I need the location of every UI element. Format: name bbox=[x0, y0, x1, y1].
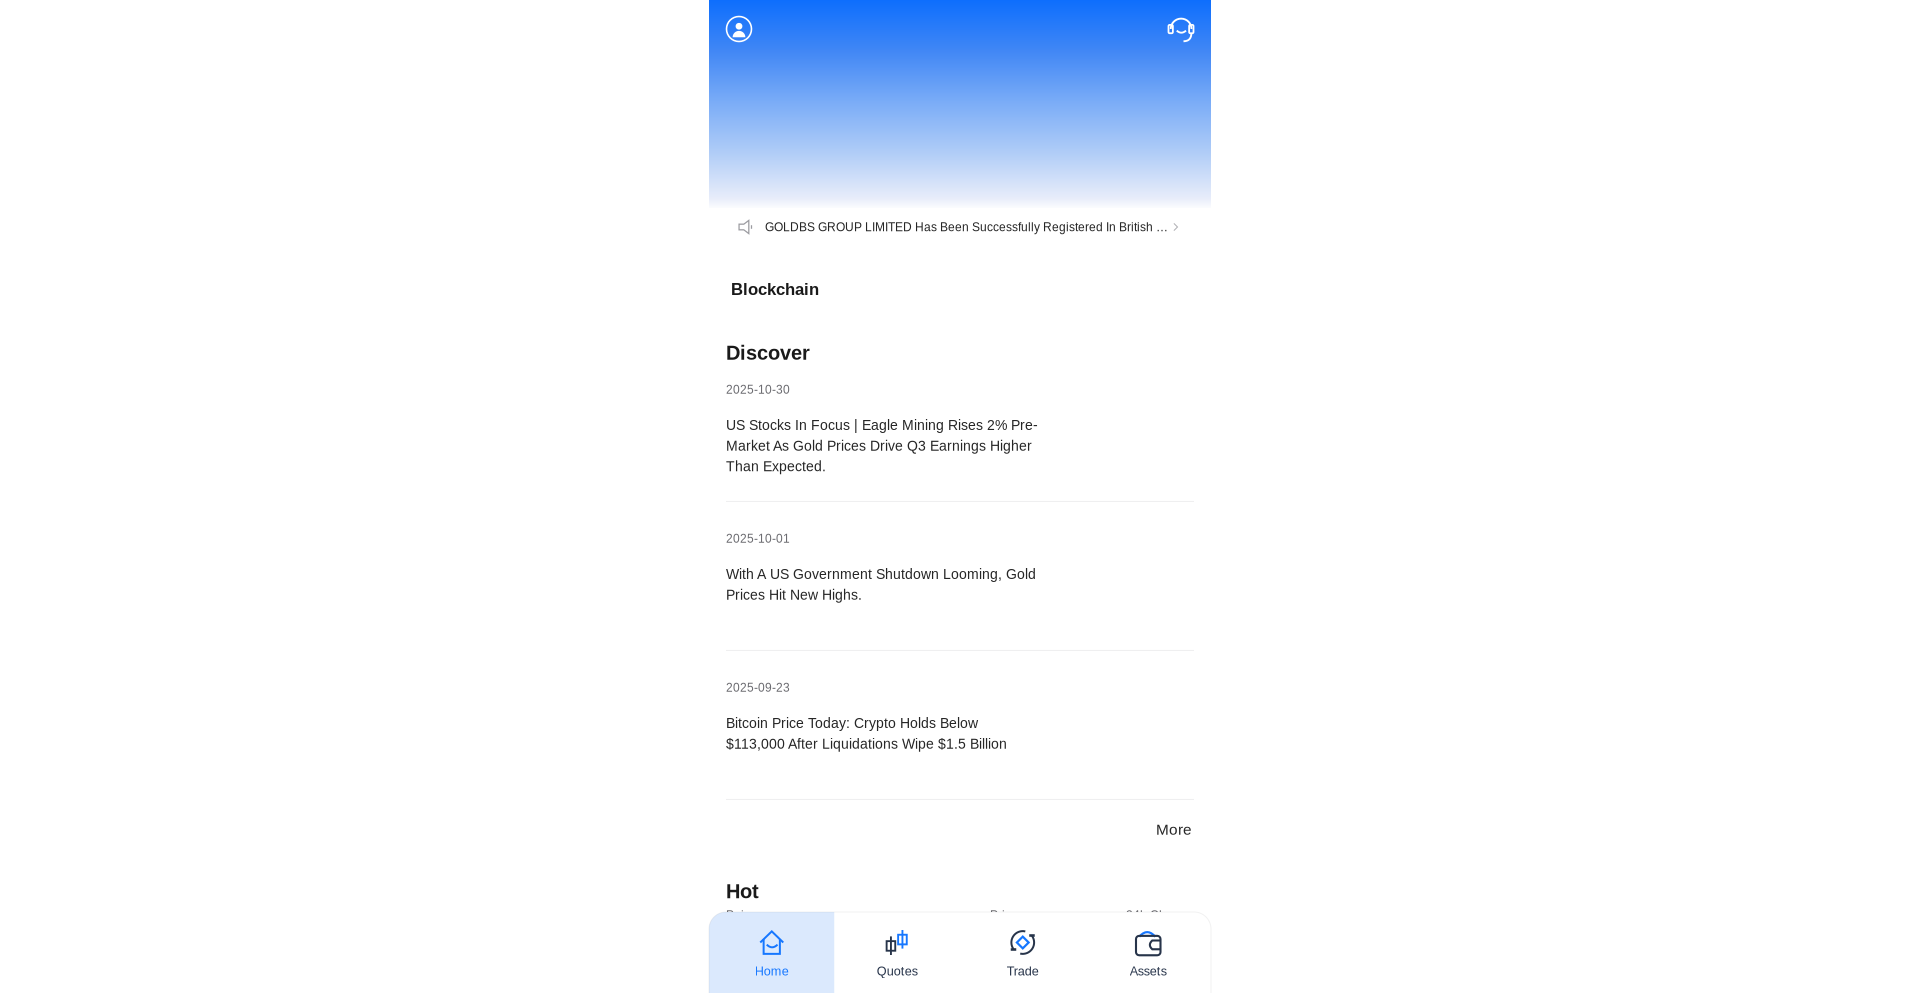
staticText: Price bbox=[990, 908, 1018, 922]
button[interactable]: More bbox=[1154, 821, 1194, 838]
staticText: Bitcoin Price Today: Crypto Holds Below … bbox=[726, 715, 1007, 752]
staticText: Pair bbox=[726, 908, 748, 922]
button[interactable]: Trade bbox=[960, 912, 1085, 993]
staticText: US Stocks In Focus | Eagle Mining Rises … bbox=[726, 417, 1038, 474]
button[interactable]: 2025-10-01 bbox=[726, 532, 1194, 681]
staticText: 2025-09-23 bbox=[726, 681, 790, 694]
button[interactable]: 2025-09-23 bbox=[726, 681, 1194, 821]
button[interactable]: Assets bbox=[1085, 912, 1211, 993]
staticText: With A US Government Shutdown Looming, G… bbox=[726, 566, 1036, 603]
button[interactable]: Blockchain bbox=[726, 280, 824, 299]
staticText: 2025-10-30 bbox=[726, 383, 790, 396]
staticText: GOLDBS GROUP LIMITED Has Been Successful… bbox=[765, 220, 1168, 234]
staticText: Home bbox=[755, 964, 789, 978]
staticText: Trade bbox=[1007, 964, 1039, 978]
staticText: 2025-10-01 bbox=[726, 532, 790, 545]
staticText: Hot bbox=[726, 880, 759, 902]
button[interactable]: Quotes bbox=[834, 912, 960, 993]
staticText: Assets bbox=[1130, 964, 1167, 978]
staticText: More bbox=[1156, 821, 1192, 838]
button[interactable]: GOLDBS GROUP LIMITED Has Been Successful… bbox=[709, 208, 1211, 246]
button[interactable]: 2025-10-30 bbox=[726, 383, 1194, 532]
staticText: Blockchain bbox=[731, 280, 819, 299]
button[interactable]: Home bbox=[709, 912, 834, 993]
button[interactable]: Customer support bbox=[1163, 11, 1199, 47]
staticText: Quotes bbox=[877, 964, 918, 978]
button[interactable]: Account bbox=[721, 11, 757, 47]
staticText: 24h Change bbox=[1126, 908, 1194, 922]
staticText: Discover bbox=[726, 342, 810, 364]
